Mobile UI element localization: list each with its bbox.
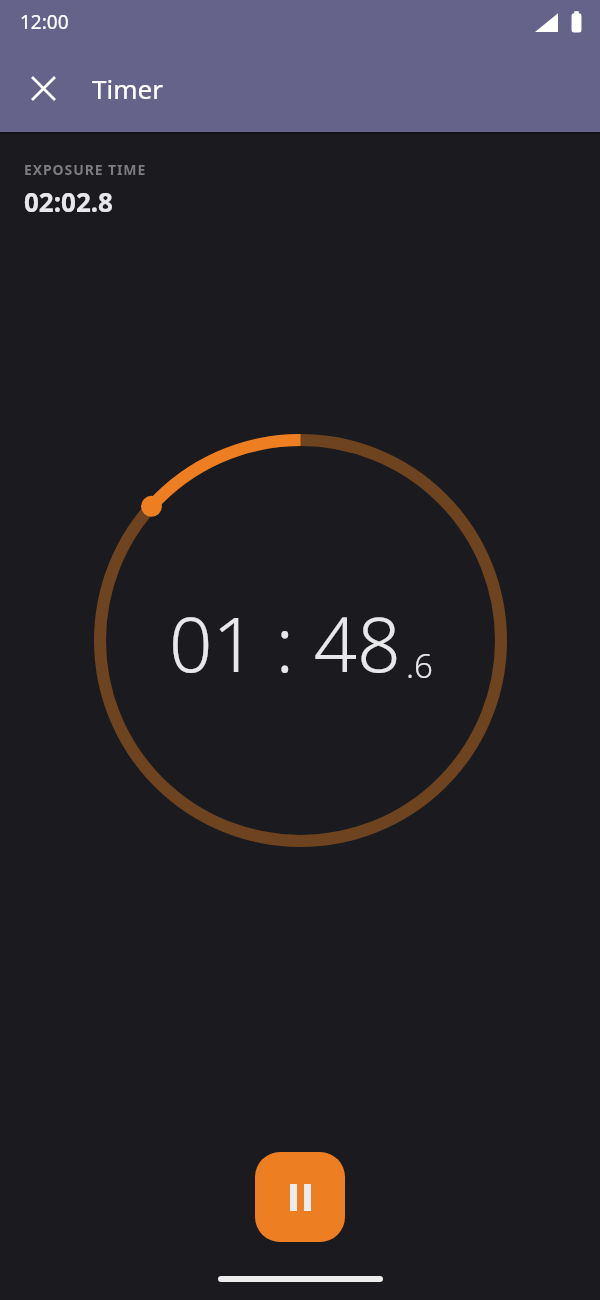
button[interactable]: Close bbox=[14, 59, 72, 117]
staticText: Timer bbox=[92, 71, 163, 106]
staticText: 01 : 48 bbox=[169, 591, 401, 695]
button[interactable]: Pause bbox=[255, 1152, 345, 1242]
staticText: EXPOSURE TIME bbox=[24, 160, 147, 179]
staticText: 12:00 bbox=[20, 9, 69, 35]
staticText: 02:02.8 bbox=[24, 184, 113, 219]
staticText: .6 bbox=[406, 643, 433, 688]
